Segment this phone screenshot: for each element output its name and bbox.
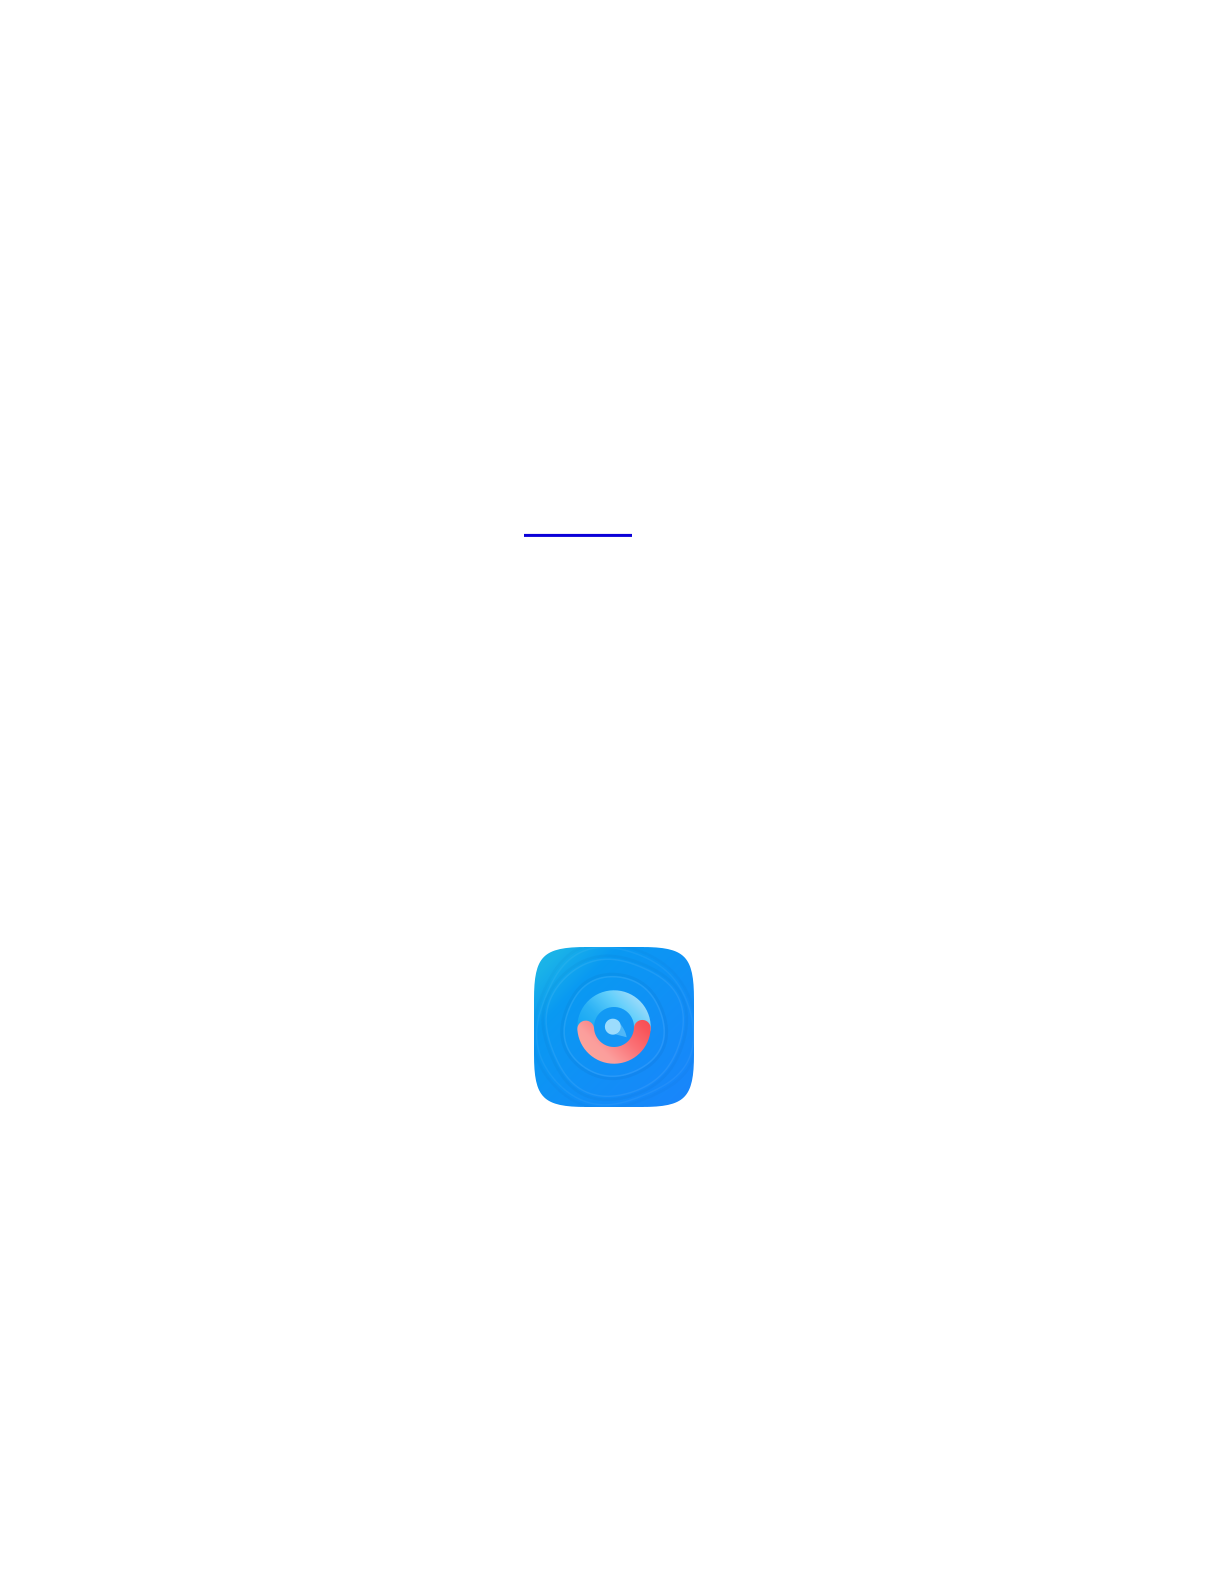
button[interactable]: App Store xyxy=(524,461,632,537)
button[interactable]: Open app xyxy=(534,947,694,1107)
